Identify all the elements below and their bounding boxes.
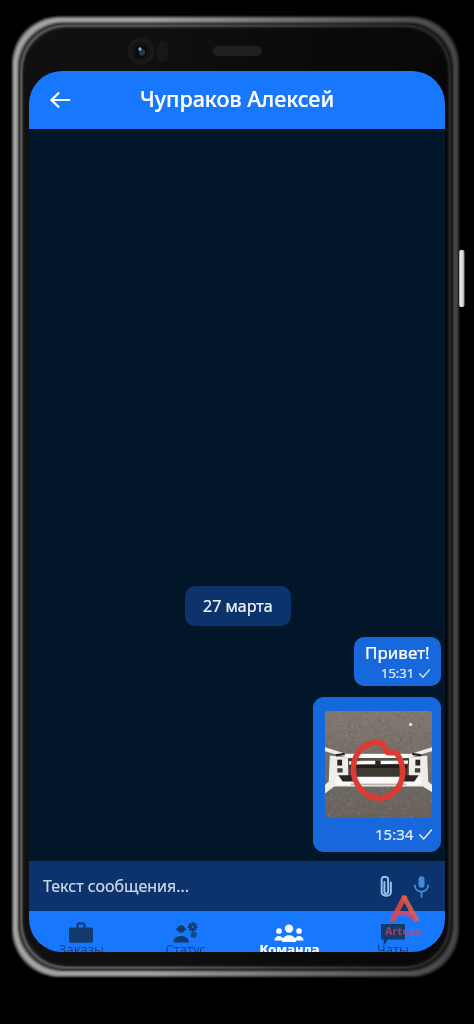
button[interactable]: Статус [133,911,237,952]
staticText: Статус [165,940,206,952]
button[interactable]: 15:34 [313,697,441,852]
staticText: 27 марта [203,595,273,617]
staticText: Artean [385,923,423,938]
staticText: Текст сообщения... [43,875,190,897]
button[interactable]: Attach file [370,870,402,902]
button[interactable]: Заказы [29,911,133,952]
staticText: Чаты [377,940,409,952]
staticText: Команда [259,940,320,952]
button[interactable]: Чаты [341,911,445,952]
staticText: 15:31 [381,664,415,682]
staticText: Чупраков Алексей [140,84,335,113]
button[interactable]: Команда [237,911,341,952]
staticText: Привет! [365,641,430,664]
button[interactable]: Привет! [354,637,441,686]
button[interactable]: Voice message [405,870,437,902]
button[interactable]: 27 марта [185,586,291,626]
staticText: 15:34 [375,824,414,844]
button[interactable]: Back [43,83,77,117]
staticText: Заказы [59,940,104,952]
